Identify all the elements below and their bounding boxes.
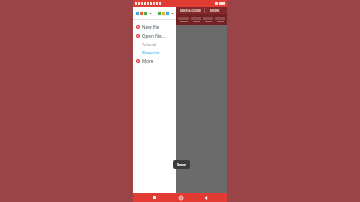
button[interactable]: Expand [171,12,174,15]
button[interactable] [215,16,225,23]
button[interactable]: Home [176,193,185,202]
staticText: Open file... [142,33,166,39]
button[interactable]: New file [133,22,176,31]
button[interactable] [191,16,201,23]
staticText: Blueprint [142,50,160,55]
button[interactable]: More [133,56,176,65]
button[interactable]: Tutorial [133,40,176,48]
staticText: New file [142,24,160,30]
button[interactable]: Expand [149,12,152,15]
button[interactable] [178,16,189,23]
staticText: Tutorial [142,42,157,47]
button[interactable]: Palette [135,11,148,16]
button[interactable]: Recents [150,193,159,202]
button[interactable]: Open file... [133,31,176,40]
button[interactable]: Save [173,160,190,169]
staticText: MORE [210,9,220,13]
button[interactable]: SAVE & CLOSE [178,7,204,14]
button[interactable] [203,16,213,23]
button[interactable]: MORE [205,7,225,14]
staticText: More [142,58,154,64]
button[interactable]: Palette [157,11,170,16]
button[interactable]: Blueprint [133,48,176,56]
staticText: Save [177,162,186,167]
button[interactable]: Back [201,193,210,202]
staticText: SAVE & CLOSE [180,9,202,13]
